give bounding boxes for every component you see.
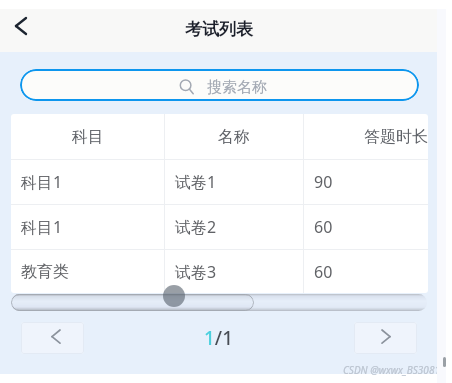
staticText: 科目1	[21, 216, 63, 238]
staticText: 试卷3	[175, 261, 217, 283]
staticText: 1/1	[204, 325, 234, 351]
staticText: CSDN @wxwx_BS30818	[343, 363, 446, 377]
staticText: 60	[314, 261, 333, 283]
staticText: 名称	[218, 127, 250, 147]
staticText: 科目1	[21, 171, 63, 193]
button[interactable]: Scroll table horizontally	[11, 294, 254, 311]
staticText: 试卷2	[175, 216, 217, 238]
staticText: 90	[314, 171, 333, 193]
staticText: 教育类	[21, 262, 69, 282]
staticText: 科目	[72, 127, 104, 147]
staticText: 答题时长	[364, 127, 428, 147]
staticText: 搜索名称	[207, 78, 267, 97]
button[interactable]: Back	[0, 5, 42, 47]
staticText: 考试列表	[185, 19, 253, 40]
button[interactable]: Previous page	[21, 322, 84, 354]
button[interactable]: Next page	[354, 322, 417, 354]
button[interactable]: 搜索名称	[20, 69, 419, 101]
staticText: 试卷1	[175, 171, 217, 193]
staticText: 60	[314, 216, 333, 238]
